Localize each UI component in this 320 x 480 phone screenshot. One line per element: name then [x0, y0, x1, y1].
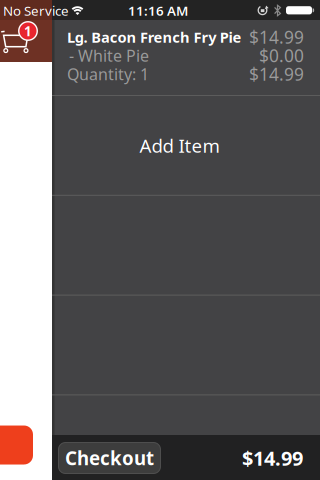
staticText: $0.00 — [259, 44, 304, 67]
staticText: 1 — [24, 22, 32, 40]
staticText: - White Pie — [69, 45, 149, 66]
staticText: Add Item — [139, 133, 219, 158]
staticText: Quantity: 1 — [67, 63, 149, 85]
button[interactable]: Add Item — [52, 96, 320, 195]
staticText: $14.99 — [249, 62, 304, 85]
staticText: Lg. Bacon French Fry Pie — [67, 27, 241, 47]
staticText: 11:16 AM — [128, 2, 188, 19]
button[interactable]: Cart — [0, 20, 52, 62]
staticText: $14.99 — [242, 445, 303, 471]
button[interactable]: Order — [0, 425, 33, 464]
staticText: $14.99 — [249, 25, 304, 48]
button[interactable]: Checkout — [58, 442, 161, 474]
staticText: No Service — [3, 2, 69, 19]
staticText: Checkout — [65, 446, 154, 470]
